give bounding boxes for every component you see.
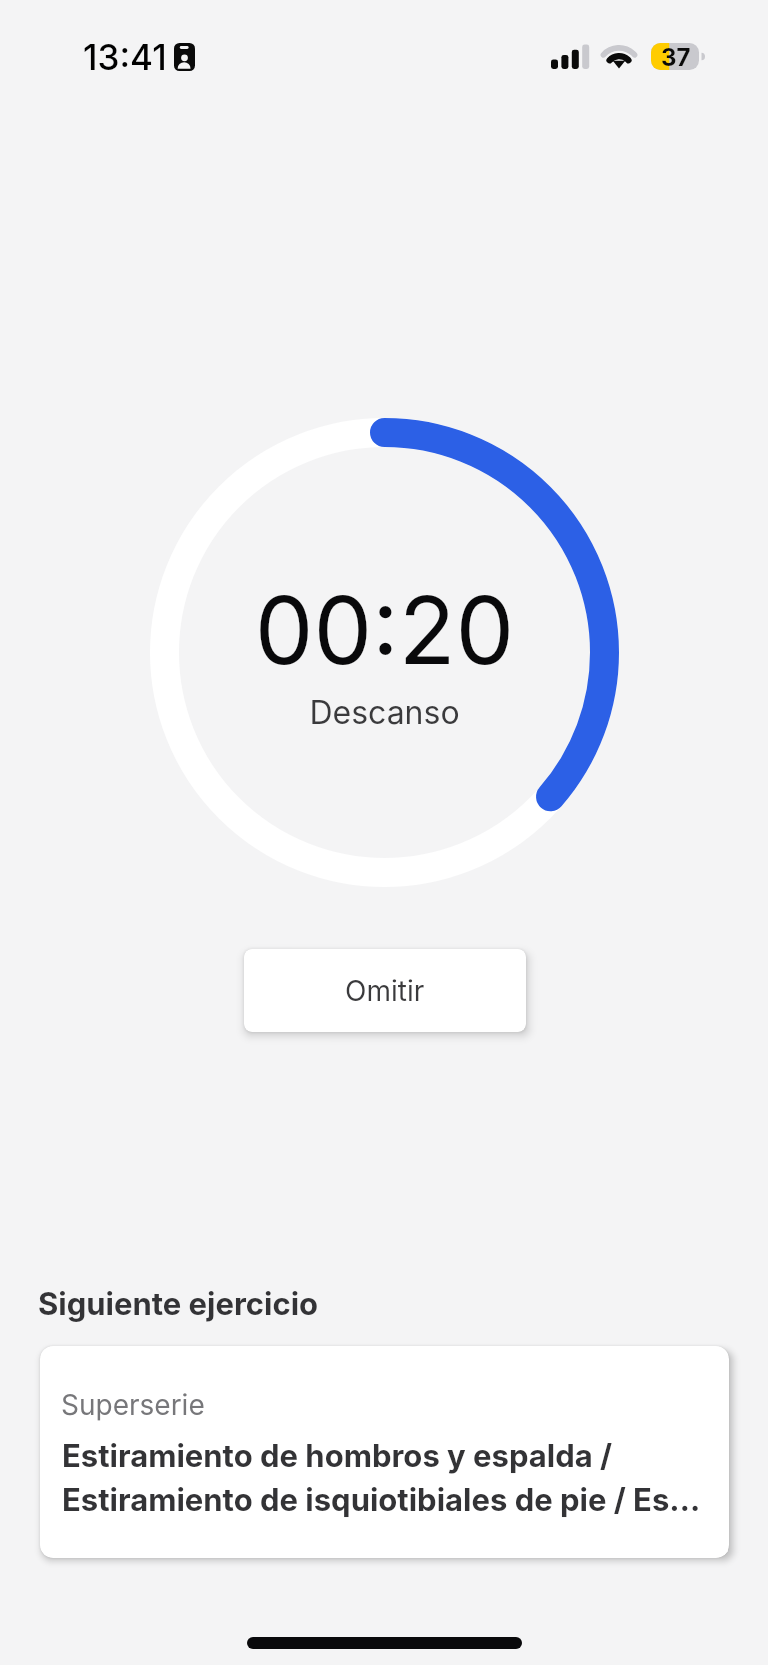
- button[interactable]: Omitir: [244, 949, 526, 1032]
- staticText: 00:20: [150, 574, 619, 687]
- staticText: Descanso: [150, 693, 619, 732]
- staticText: 13:41: [83, 36, 167, 78]
- staticText: 37: [661, 43, 691, 72]
- button[interactable]: Superserie: [40, 1346, 729, 1558]
- staticText: Superserie: [61, 1388, 205, 1422]
- staticText: Omitir: [345, 974, 425, 1008]
- staticText: Siguiente ejercicio: [38, 1285, 319, 1323]
- button[interactable]: Temporizador de descanso 00:20: [150, 418, 619, 887]
- staticText: Estiramiento de hombros y espalda / Esti…: [62, 1437, 703, 1519]
